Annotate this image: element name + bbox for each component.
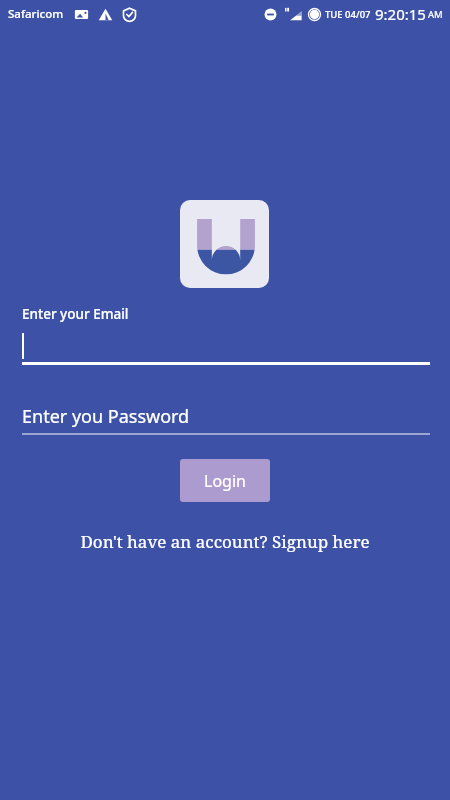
- staticText: 9:20:15: [375, 4, 426, 24]
- button[interactable]: Login: [180, 459, 270, 502]
- button[interactable]: Enter your Email: [22, 305, 430, 365]
- staticText: Enter your Email: [22, 305, 129, 323]
- staticText: Don't have an account? Signup here: [80, 530, 370, 553]
- button[interactable]: Don't have an account? Signup here: [0, 530, 450, 553]
- staticText: TUE 04/07: [325, 8, 371, 21]
- staticText: Safaricom: [8, 6, 64, 22]
- staticText: Login: [204, 470, 246, 492]
- button[interactable]: Enter you Password: [22, 404, 430, 435]
- staticText: AM: [428, 8, 443, 21]
- staticText: Enter you Password: [22, 404, 190, 429]
